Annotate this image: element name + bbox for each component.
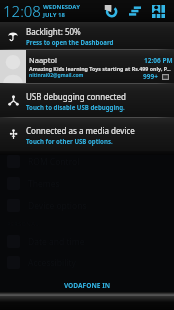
- button[interactable]: Backlight: 50%: [0, 22, 174, 49]
- button[interactable]: Toggle panel: [148, 1, 168, 21]
- staticText: 999+: [143, 72, 158, 81]
- staticText: Touch for other USB options.: [26, 137, 113, 145]
- button[interactable]: Naaptol: [0, 50, 174, 83]
- staticText: 12:08: [3, 1, 41, 21]
- button[interactable]: Close notification shade: [0, 292, 174, 302]
- staticText: Connected as a media device: [26, 125, 135, 136]
- button[interactable]: Connected as a media device: [0, 118, 174, 151]
- staticText: USB debugging connected: [26, 91, 126, 102]
- staticText: Touch to disable USB debugging.: [26, 103, 125, 111]
- button[interactable]: USB debugging connected: [0, 84, 174, 117]
- staticText: JULY 18: [43, 11, 65, 19]
- staticText: Naaptol: [29, 55, 57, 65]
- button[interactable]: Quick settings: [125, 1, 145, 21]
- staticText: Amazing Kids learning Toys starting at R…: [29, 65, 171, 72]
- staticText: VODAFONE IN: [0, 281, 174, 290]
- staticText: nitinrai02@gmail.com: [29, 72, 84, 79]
- staticText: 12:06 PM: [144, 56, 173, 65]
- staticText: Press to open the Dashboard: [26, 38, 114, 46]
- staticText: Backlight: 50%: [26, 26, 81, 37]
- staticText: WEDNESDAY: [43, 3, 80, 11]
- button[interactable]: Auto rotate screen: [101, 1, 121, 21]
